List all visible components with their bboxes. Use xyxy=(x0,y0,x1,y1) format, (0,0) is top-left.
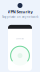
staticText: VPN Security xyxy=(7,9,32,14)
staticText: Connected xyxy=(16,38,24,40)
staticText: Stay private on any network xyxy=(2,15,38,19)
